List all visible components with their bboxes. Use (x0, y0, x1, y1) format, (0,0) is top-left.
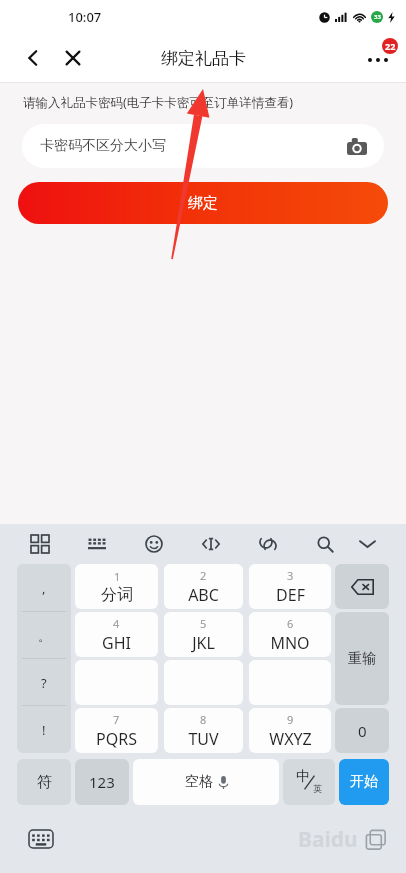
staticText: 0 (358, 721, 367, 741)
staticText: 绑定 (188, 194, 218, 213)
button[interactable]: Backspace (335, 564, 389, 609)
staticText: 空格 (185, 773, 213, 791)
button[interactable]: 绑定 (18, 182, 388, 224)
staticText: WXYZ (269, 728, 312, 750)
button[interactable]: Clipboard (255, 531, 281, 557)
staticText: 英 (313, 783, 322, 794)
staticText: 6 (287, 616, 294, 631)
button[interactable]: 空格 (133, 759, 279, 805)
staticText: 9 (287, 712, 294, 727)
staticText: 33 (374, 13, 381, 21)
staticText: 7 (113, 712, 120, 727)
button[interactable]: 123 (75, 759, 129, 805)
staticText: 10:07 (68, 8, 102, 26)
staticText: Baidu (298, 825, 358, 854)
staticText: 开始 (350, 773, 378, 791)
button[interactable]: 9 (249, 708, 331, 753)
button[interactable]: More options (356, 36, 400, 80)
button[interactable]: 。 (17, 612, 71, 659)
staticText: 2 (200, 568, 207, 583)
button[interactable]: 3 (249, 564, 331, 609)
button[interactable]: 2 (164, 564, 243, 609)
staticText: GHI (102, 632, 131, 654)
button[interactable]: Text cursor (198, 531, 224, 557)
button[interactable]: 0 (335, 708, 389, 753)
staticText: MNO (270, 632, 310, 654)
button[interactable]: Back (17, 42, 49, 74)
staticText: 请输入礼品卡密码(电子卡卡密可至订单详情查看) (23, 94, 294, 111)
staticText: JKL (192, 632, 215, 654)
button[interactable]: Scan gift card (344, 133, 370, 159)
button[interactable]: 6 (249, 612, 331, 657)
staticText: 绑定礼品卡 (161, 48, 246, 69)
staticText: 。 (38, 628, 51, 644)
button[interactable]: Keyboard layout (84, 531, 110, 557)
staticText: ? (41, 674, 47, 692)
staticText: ABC (188, 584, 219, 606)
button[interactable]: 7 (75, 708, 158, 753)
staticText: 分词 (101, 585, 133, 605)
button[interactable]: 8 (164, 708, 243, 753)
button[interactable]: Emoji (141, 531, 167, 557)
staticText: 123 (89, 772, 115, 792)
staticText: DEF (276, 584, 305, 606)
staticText: 4 (113, 616, 120, 631)
button[interactable]: Search (312, 531, 338, 557)
button[interactable]: 1 (75, 564, 158, 609)
button[interactable]: Hide keyboard (352, 529, 382, 559)
button[interactable]: Apps (27, 531, 53, 557)
button[interactable]: 重输 (335, 612, 389, 705)
staticText: 22 (385, 40, 396, 52)
button[interactable]: Close (57, 42, 89, 74)
staticText: 重输 (348, 650, 376, 668)
staticText: PQRS (96, 728, 137, 750)
staticText: TUV (188, 728, 219, 750)
button[interactable]: ? (17, 659, 71, 706)
button[interactable]: 开始 (339, 759, 389, 805)
staticText: 符 (37, 773, 52, 792)
button[interactable]: 卡密码不区分大小写 (22, 124, 384, 168)
staticText: 中 (296, 768, 310, 786)
staticText: 5 (200, 616, 207, 631)
staticText: 3 (287, 568, 294, 583)
button[interactable]: 符 (17, 759, 71, 805)
staticText: , (42, 579, 46, 597)
staticText: 8 (200, 712, 207, 727)
staticText: ! (42, 721, 46, 739)
button[interactable]: 5 (164, 612, 243, 657)
button[interactable]: Chinese English toggle (283, 759, 335, 805)
button[interactable]: , (17, 564, 71, 612)
staticText: 卡密码不区分大小写 (40, 137, 344, 155)
button[interactable]: Switch keyboard (28, 829, 54, 849)
staticText: 1 (114, 569, 121, 584)
button[interactable]: ! (17, 706, 71, 753)
button[interactable]: 4 (75, 612, 158, 657)
